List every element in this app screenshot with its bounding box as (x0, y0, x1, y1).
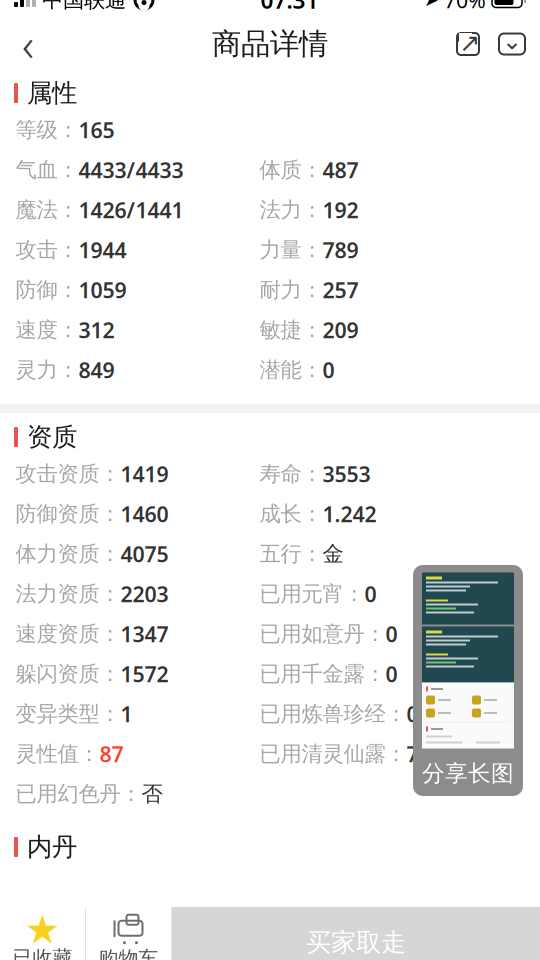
staticText: 87 (99, 740, 123, 768)
staticText: 耐力： (259, 277, 322, 303)
staticText: 购物车 (98, 946, 158, 960)
staticText: 已用幻色丹： (15, 781, 141, 807)
staticText: 五行： (259, 541, 322, 567)
staticText: 已收藏 (12, 946, 72, 960)
staticText: 192 (322, 196, 358, 224)
staticText: 魔法： (15, 197, 78, 223)
staticText: 0 (406, 700, 418, 728)
staticText: ➤ (424, 0, 439, 10)
staticText: 潜能： (259, 357, 322, 383)
staticText: 买家取走 (306, 927, 406, 958)
staticText: 变异类型： (15, 701, 120, 727)
staticText: 2203 (120, 580, 168, 608)
staticText: 灵力： (15, 357, 78, 383)
staticText: 1 (120, 700, 132, 728)
staticText: 已用清灵仙露： (259, 741, 406, 767)
staticText: 寿命： (259, 461, 322, 487)
staticText: 躲闪资质： (15, 661, 120, 687)
staticText: 209 (322, 316, 358, 344)
staticText: 3553 (322, 460, 370, 488)
staticText: 1059 (78, 276, 126, 304)
staticText: 1426/1441 (78, 196, 183, 224)
staticText: 0 (385, 660, 397, 688)
staticText: 165 (78, 116, 114, 144)
staticText: 成长： (259, 501, 322, 527)
staticText: 速度： (15, 317, 78, 343)
staticText: 789 (322, 236, 358, 264)
staticText: 4433/4433 (78, 156, 183, 184)
staticText: 1460 (120, 500, 168, 528)
staticText: 资质 (27, 421, 77, 452)
staticText: 防御： (15, 277, 78, 303)
staticText: ⌄ (502, 27, 522, 55)
button[interactable]: Share (446, 20, 490, 68)
button[interactable]: 买家取走 (172, 907, 540, 960)
staticText: 内丹 (27, 831, 77, 862)
staticText: 法力： (259, 197, 322, 223)
staticText: 敏捷： (259, 317, 322, 343)
staticText: 否 (141, 781, 162, 807)
staticText: 中国联通 (42, 0, 126, 13)
staticText: 849 (78, 356, 114, 384)
button[interactable]: Messages (490, 20, 534, 68)
staticText: 气血： (15, 157, 78, 183)
staticText: 312 (78, 316, 114, 344)
staticText: 07:31 (260, 0, 318, 15)
staticText: 1572 (120, 660, 168, 688)
staticText: 已用千金露： (259, 661, 385, 687)
staticText: 1.242 (322, 500, 376, 528)
staticText: 速度资质： (15, 621, 120, 647)
staticText: ★ (24, 907, 60, 952)
staticText: 体力资质： (15, 541, 120, 567)
staticText: 等级： (15, 117, 78, 143)
staticText: ‹ (22, 14, 34, 74)
staticText: 商品详情 (212, 26, 328, 62)
staticText: 灵性值： (15, 741, 99, 767)
staticText: 257 (322, 276, 358, 304)
staticText: 4075 (120, 540, 168, 568)
staticText: 金 (322, 541, 343, 567)
staticText: 已用元宵： (259, 581, 364, 607)
staticText: 1347 (120, 620, 168, 648)
staticText: 已用炼兽珍经： (259, 701, 406, 727)
staticText: 已用如意丹： (259, 621, 385, 647)
staticText: 1944 (78, 236, 126, 264)
staticText: 力量： (259, 237, 322, 263)
staticText: 分享长图 (422, 760, 514, 787)
button[interactable]: 购物车 (86, 907, 171, 960)
staticText: 1419 (120, 460, 168, 488)
staticText: 7 (406, 740, 418, 768)
staticText: 0 (364, 580, 376, 608)
staticText: ↗ (459, 29, 480, 57)
staticText: 0 (322, 356, 334, 384)
staticText: 体质： (259, 157, 322, 183)
button[interactable]: 分享长图 (413, 565, 523, 796)
staticText: 攻击： (15, 237, 78, 263)
staticText: 属性 (27, 77, 77, 108)
staticText: 487 (322, 156, 358, 184)
button[interactable]: ★ (0, 907, 85, 960)
staticText: 攻击资质： (15, 461, 120, 487)
staticText: 防御资质： (15, 501, 120, 527)
button[interactable]: Back (6, 20, 50, 68)
staticText: 0 (385, 620, 397, 648)
staticText: 70% (444, 0, 486, 14)
staticText: 法力资质： (15, 581, 120, 607)
